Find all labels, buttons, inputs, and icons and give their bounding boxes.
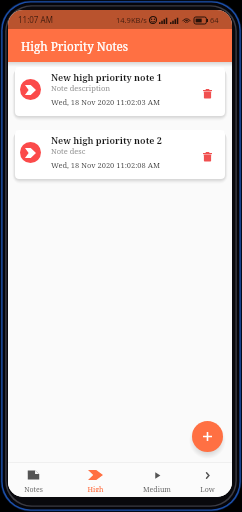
staticText: Wed, 18 Nov 2020 11:02:08 AM bbox=[51, 160, 160, 170]
staticText: Note description bbox=[51, 83, 111, 93]
staticText: Medium bbox=[143, 485, 171, 492]
button[interactable]: Medium bbox=[132, 463, 182, 497]
staticText: New high priority note 1 bbox=[51, 71, 162, 83]
button[interactable]: Delete bbox=[197, 84, 217, 104]
staticText: Notes bbox=[24, 485, 43, 492]
staticText: 14.9KB/s bbox=[116, 15, 147, 25]
button[interactable]: Delete bbox=[197, 147, 217, 167]
button[interactable]: Notes bbox=[8, 463, 58, 497]
button[interactable]: Low bbox=[182, 463, 232, 497]
staticText: High bbox=[87, 485, 104, 492]
staticText: 64 bbox=[210, 15, 219, 25]
staticText: Wed, 18 Nov 2020 11:02:03 AM bbox=[51, 97, 160, 107]
staticText: 11:07 AM bbox=[18, 14, 53, 25]
staticText: Note desc bbox=[51, 146, 86, 156]
button[interactable]: Add note bbox=[192, 421, 223, 452]
staticText: Low bbox=[200, 485, 215, 492]
button[interactable]: New high priority note 2 bbox=[15, 130, 225, 179]
button[interactable]: High bbox=[58, 463, 132, 497]
staticText: New high priority note 2 bbox=[51, 134, 162, 146]
staticText: High Priority Notes bbox=[21, 38, 129, 54]
button[interactable]: New high priority note 1 bbox=[15, 67, 225, 116]
